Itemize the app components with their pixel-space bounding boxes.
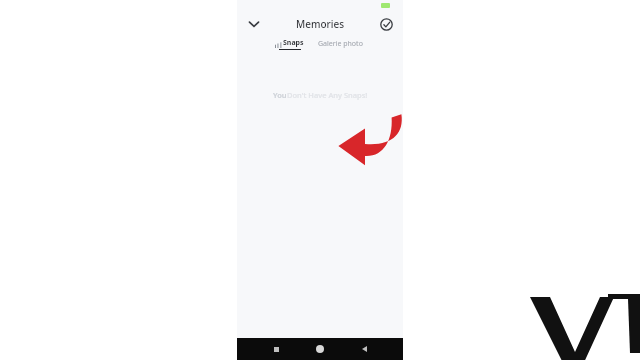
staticText: You [273, 90, 287, 100]
button[interactable]: Close [243, 13, 265, 35]
button[interactable]: Select [375, 13, 397, 35]
button[interactable]: Snaps [275, 38, 304, 50]
staticText: Don't Have Any Snaps! [287, 90, 368, 100]
staticText: Galerie photo [318, 39, 363, 49]
button[interactable]: Recents [265, 338, 287, 360]
staticText: Snaps [283, 38, 304, 48]
staticText: Memories [296, 17, 345, 31]
button[interactable]: Galerie photo [318, 39, 363, 49]
button[interactable]: Back [353, 338, 375, 360]
button[interactable]: Home [309, 338, 331, 360]
